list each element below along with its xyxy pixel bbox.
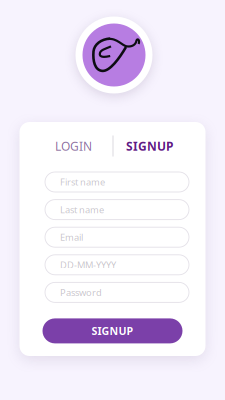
staticText: Password [60, 286, 102, 299]
staticText: Email [60, 231, 83, 243]
staticText: DD-MM-YYYY [60, 259, 116, 271]
button[interactable]: SIGNUP [42, 318, 182, 343]
staticText: First name [60, 176, 105, 188]
button[interactable]: Password [45, 282, 189, 302]
staticText: LOGIN [55, 138, 92, 154]
button[interactable]: Email [45, 227, 189, 247]
button[interactable]: DD-MM-YYYY [45, 255, 189, 275]
button[interactable]: Last name [45, 200, 189, 220]
button[interactable]: LOGIN [47, 135, 99, 157]
staticText: SIGNUP [126, 138, 173, 154]
button[interactable]: SIGNUP [120, 135, 178, 157]
staticText: Last name [60, 203, 104, 216]
button[interactable]: First name [45, 172, 189, 192]
staticText: SIGNUP [91, 324, 133, 338]
